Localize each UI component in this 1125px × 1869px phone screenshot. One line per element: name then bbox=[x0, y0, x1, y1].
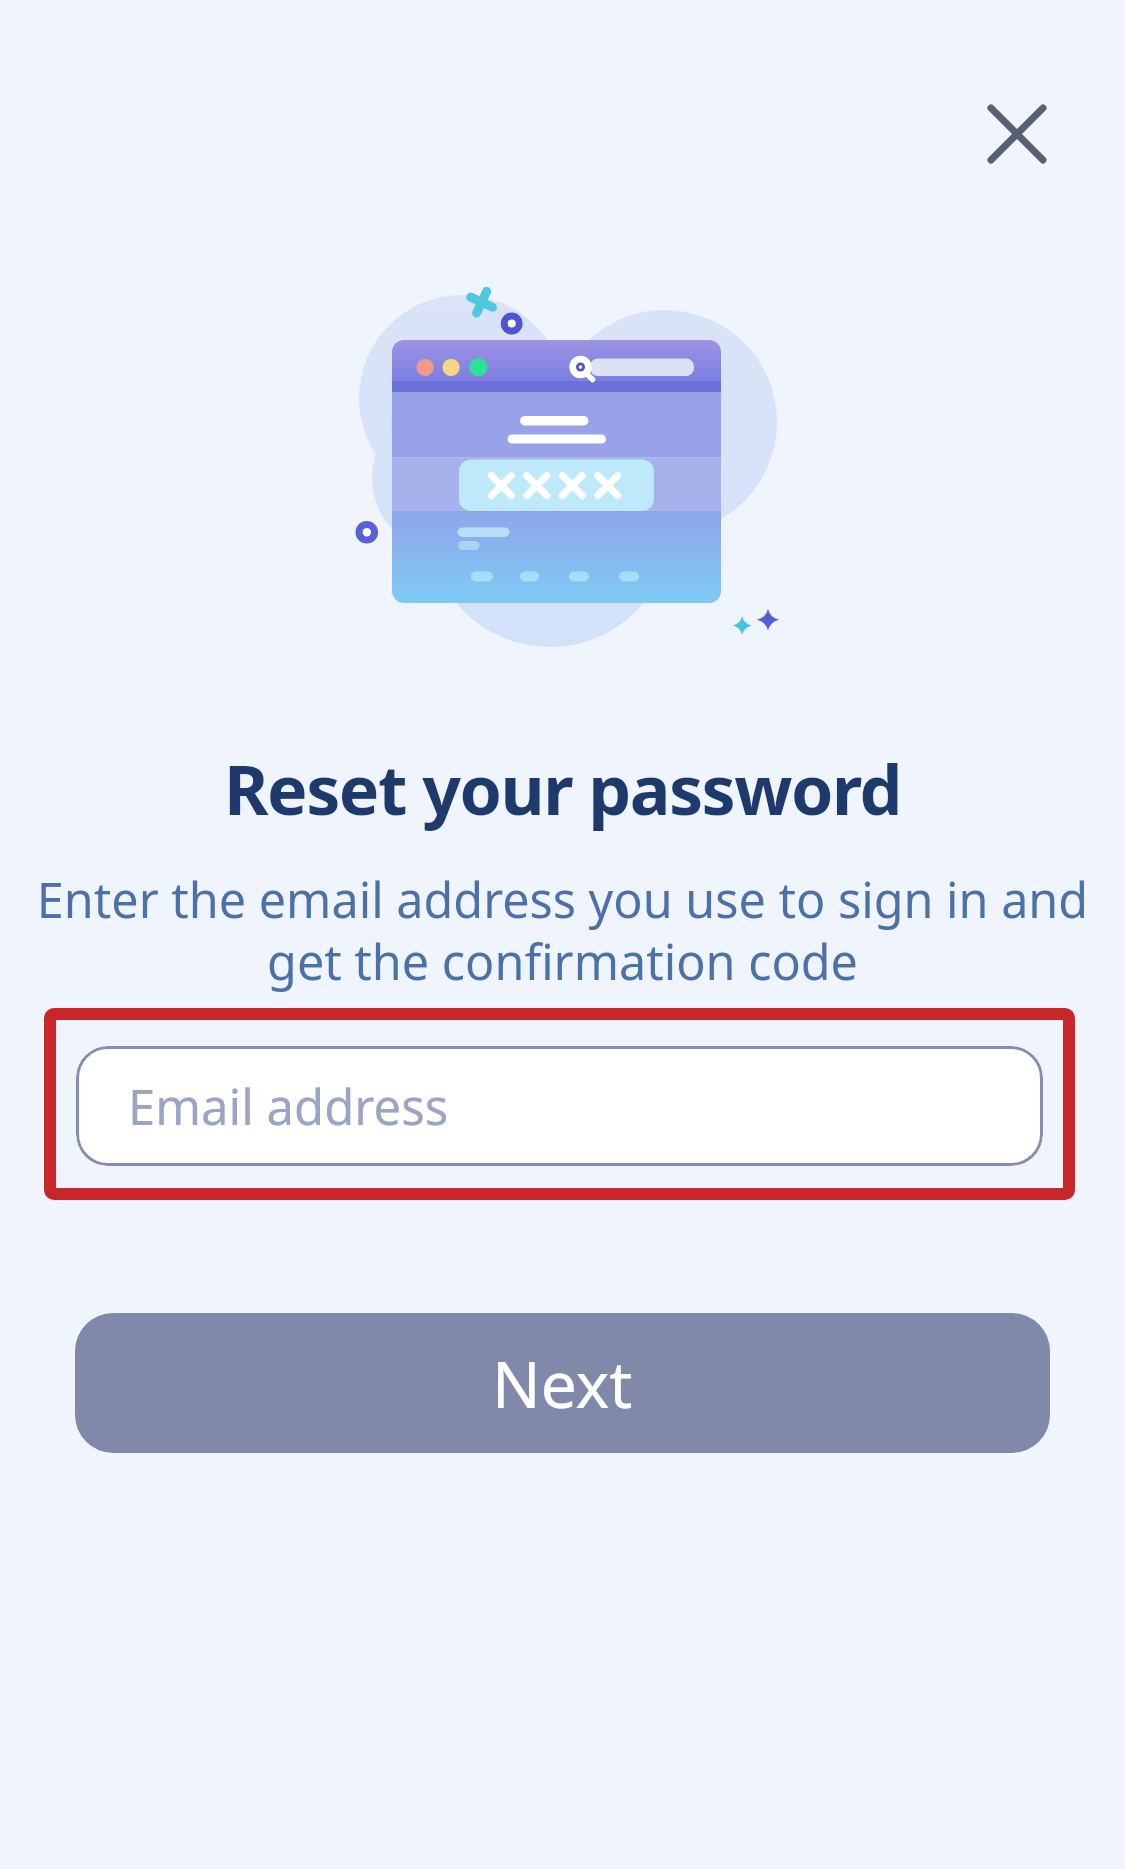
staticText: Next bbox=[492, 1340, 633, 1427]
staticText: Reset your password bbox=[224, 742, 901, 835]
staticText: Enter the email address you use to sign … bbox=[0, 866, 1125, 994]
button[interactable]: Email address bbox=[76, 1046, 1043, 1166]
button[interactable] bbox=[984, 101, 1050, 167]
button[interactable]: Next bbox=[75, 1313, 1050, 1453]
staticText: Email address bbox=[128, 1073, 449, 1140]
